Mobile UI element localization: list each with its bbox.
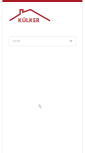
- button[interactable]: Home: [9, 37, 76, 46]
- staticText: Home: [12, 39, 20, 43]
- button[interactable]: Külker home: [0, 2, 85, 37]
- staticText: KÜLKER: [18, 17, 39, 24]
